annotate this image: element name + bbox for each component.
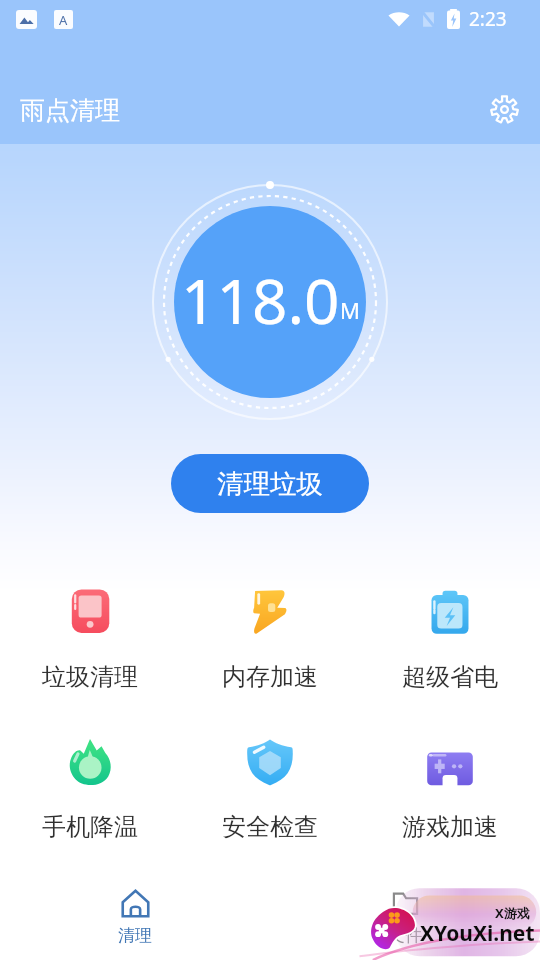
staticText: 手机降温	[42, 812, 138, 842]
button[interactable]: 超级省电	[360, 588, 540, 692]
button[interactable]: Settings	[484, 89, 524, 129]
staticText: 雨点清理	[20, 95, 120, 126]
staticText: 文件	[388, 925, 422, 946]
button[interactable]: 手机降温	[0, 738, 180, 842]
staticText: 垃圾清理	[42, 662, 138, 692]
staticText: 118.0	[181, 258, 340, 342]
button[interactable]: 内存加速	[180, 588, 360, 692]
button[interactable]: 垃圾清理	[0, 588, 180, 692]
button[interactable]: 安全检查	[180, 738, 360, 842]
button[interactable]: 清理	[0, 864, 270, 960]
staticText: 超级省电	[402, 662, 498, 692]
button[interactable]: 游戏加速	[360, 738, 540, 842]
staticText: 清理	[118, 925, 152, 946]
staticText: X游戏	[495, 904, 530, 922]
staticText: 清理垃圾	[217, 467, 323, 500]
staticText: M	[340, 295, 360, 325]
staticText: XYouXi.net	[420, 919, 535, 948]
staticText: 2:23	[469, 6, 507, 32]
staticText: 游戏加速	[402, 812, 498, 842]
button[interactable]: 清理垃圾	[171, 454, 369, 513]
button[interactable]: 文件	[270, 864, 540, 960]
staticText: 内存加速	[222, 662, 318, 692]
staticText: 安全检查	[222, 812, 318, 842]
staticText: A	[59, 11, 68, 29]
